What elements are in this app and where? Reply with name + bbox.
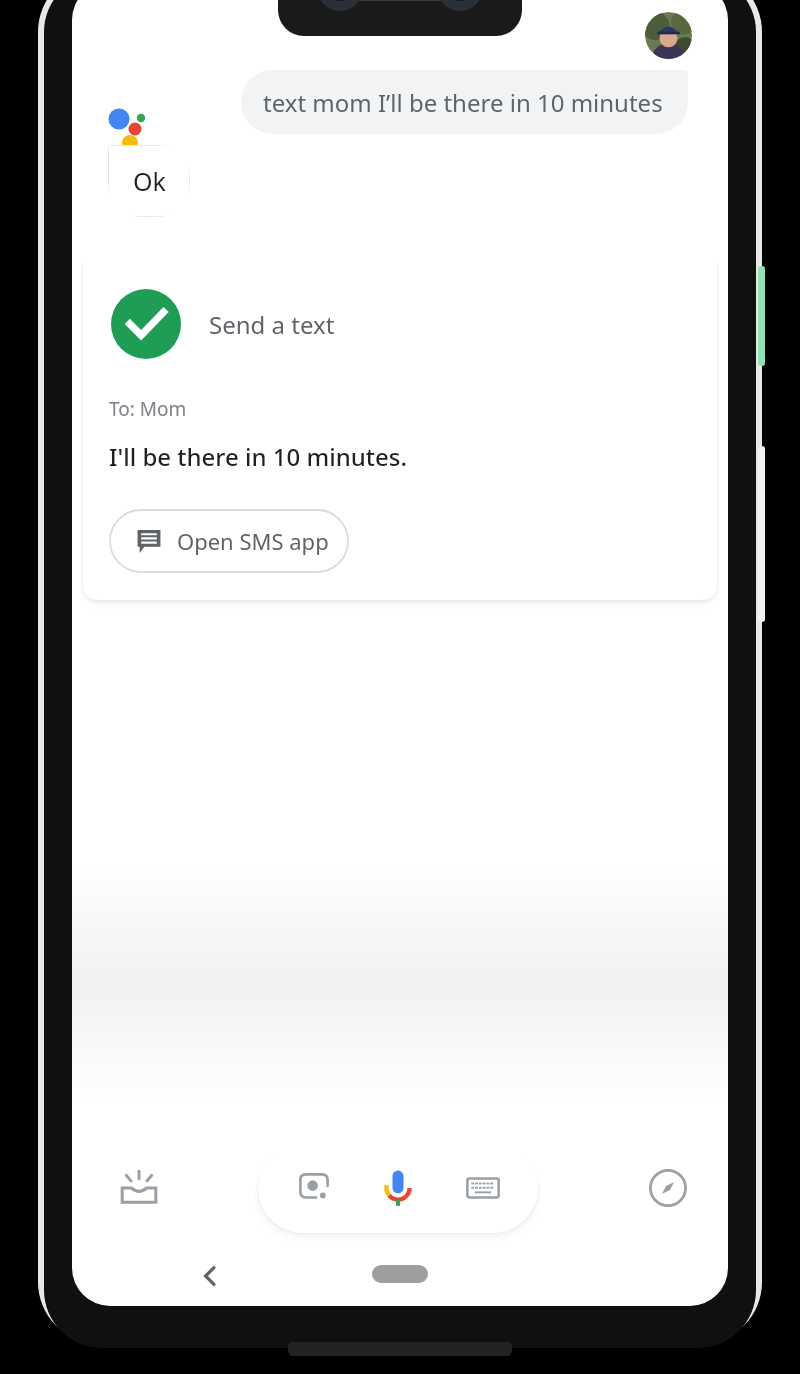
staticText: I'll be there in 10 minutes. — [109, 440, 407, 473]
button[interactable]: Account — [645, 12, 692, 59]
staticText: text mom I’ll be there in 10 minutes — [263, 86, 663, 119]
staticText: Ok — [133, 164, 166, 198]
button[interactable]: Voice search — [369, 1159, 427, 1217]
staticText: Open SMS app — [177, 526, 329, 556]
button[interactable]: Ok — [108, 145, 190, 217]
button[interactable]: Home — [372, 1265, 428, 1283]
button[interactable]: Keyboard — [454, 1159, 512, 1217]
button[interactable]: Open SMS app — [110, 510, 348, 572]
button[interactable]: Back — [184, 1250, 236, 1302]
button[interactable]: text mom I’ll be there in 10 minutes — [241, 70, 688, 134]
button[interactable]: Snapshot — [94, 1143, 184, 1233]
button[interactable]: Send a text — [83, 248, 717, 600]
staticText: To: Mom — [109, 396, 187, 422]
staticText: Send a text — [209, 308, 335, 341]
button[interactable]: Explore — [623, 1143, 713, 1233]
button[interactable]: Google Lens — [285, 1159, 343, 1217]
